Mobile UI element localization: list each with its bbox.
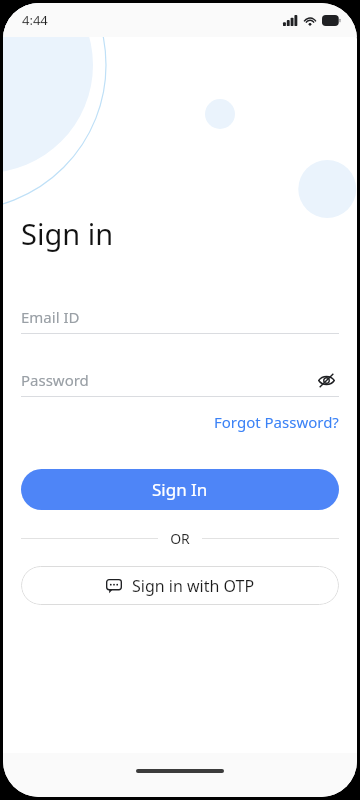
staticText: Password [21,370,313,390]
staticText: Email ID [21,307,80,327]
staticText: OR [170,529,190,548]
button[interactable]: Sign in with OTP [21,566,339,605]
staticText: Sign in with OTP [132,575,255,597]
staticText: Forgot Password? [214,412,339,432]
staticText: Sign in [21,214,114,253]
button[interactable]: Email ID [21,300,339,333]
staticText: Sign In [152,478,208,501]
staticText: 4:44 [22,11,48,29]
button[interactable]: Password [21,363,339,396]
button[interactable]: Forgot Password? [214,408,339,436]
button[interactable]: Sign In [21,469,339,510]
button[interactable]: Show password [313,367,339,393]
